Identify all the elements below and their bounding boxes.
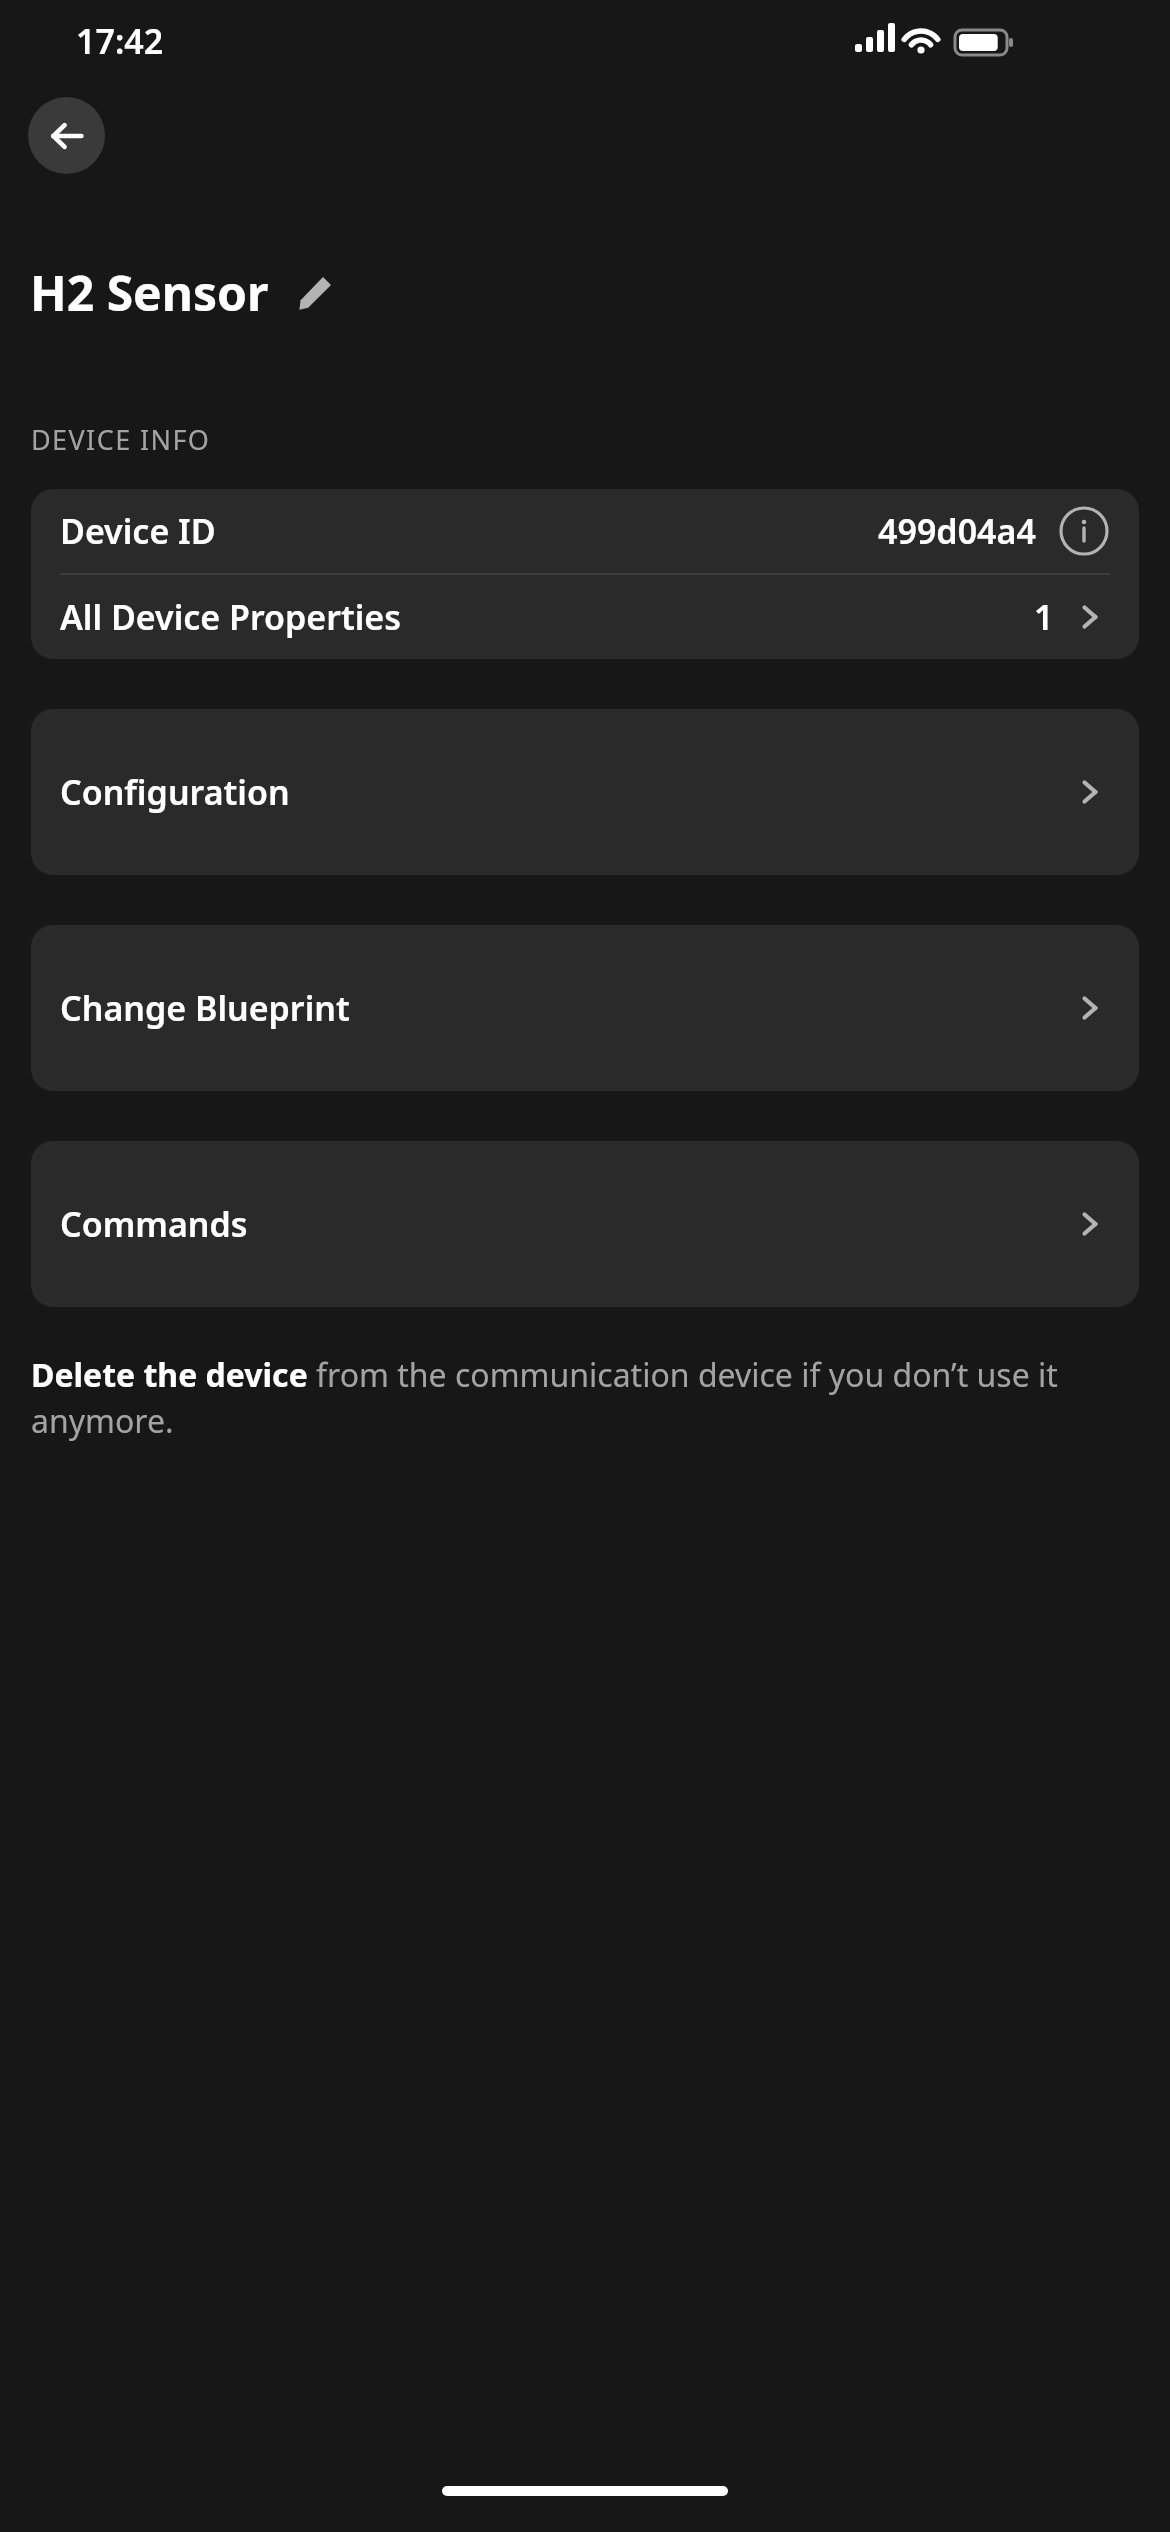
staticText: 17:42 [76, 18, 164, 64]
staticText: Change Blueprint [60, 985, 350, 1031]
button[interactable]: Change Blueprint [31, 925, 1139, 1091]
button[interactable]: Device ID [31, 489, 1139, 573]
staticText: Commands [60, 1201, 248, 1247]
button[interactable]: Configuration [31, 709, 1139, 875]
staticText: 1 [1034, 594, 1054, 640]
button[interactable]: Back [28, 97, 105, 174]
button[interactable]: All Device Properties [31, 575, 1139, 659]
staticText: Delete the device from the communication… [31, 1353, 1110, 1442]
button[interactable]: Edit name [291, 269, 339, 317]
staticText: Configuration [60, 769, 290, 815]
staticText: DEVICE INFO [31, 421, 211, 458]
staticText: Device ID [60, 508, 216, 554]
staticText: H2 Sensor [30, 260, 269, 325]
staticText: All Device Properties [60, 594, 402, 640]
staticText: 499d04a4 [878, 508, 1036, 554]
button[interactable]: Info [1058, 505, 1110, 557]
button[interactable]: Commands [31, 1141, 1139, 1307]
